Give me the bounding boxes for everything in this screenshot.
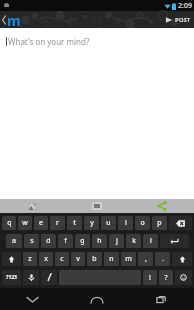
staticText: , [145,254,147,264]
staticText: b [92,254,97,264]
button[interactable]: k [126,234,141,248]
button[interactable]: ? [159,270,173,285]
button[interactable]: Share [129,199,194,213]
staticText: POST [175,16,191,24]
staticText: g [80,236,85,246]
button[interactable]: Backspace [169,216,192,230]
staticText: s [30,236,34,246]
button[interactable]: g [75,234,90,248]
button[interactable]: i [118,216,133,230]
staticText: n [109,254,114,264]
staticText: v [76,254,80,264]
button[interactable]: l [143,234,158,248]
button[interactable]: n [104,252,119,266]
button[interactable]: Emoji [175,270,192,285]
staticText: x [44,254,48,264]
button[interactable]: Hide keyboard [0,288,64,310]
button[interactable]: Attach photo [0,199,64,213]
button[interactable]: d [41,234,56,248]
staticText: i [125,218,127,228]
button[interactable]: Navigate up [0,11,25,28]
button[interactable]: Shift [2,252,21,266]
button[interactable]: e [34,216,48,230]
staticText: d [46,236,51,246]
staticText: j [116,236,118,246]
button[interactable]: Attach video [64,199,129,213]
staticText: f [64,236,67,246]
button[interactable]: ?123 [2,270,21,285]
button[interactable]: u [101,216,116,230]
staticText: w [22,218,28,228]
button[interactable]: t [67,216,82,230]
button[interactable]: a [6,234,22,248]
staticText: 2:09 [178,1,192,11]
button[interactable]: c [55,252,69,266]
staticText: a [12,236,16,246]
button[interactable]: j [109,234,124,248]
staticText: r [56,218,59,228]
button[interactable]: Handwriting [41,270,57,285]
button[interactable]: . [155,252,170,266]
button[interactable]: w [18,216,32,230]
button[interactable]: y [84,216,99,230]
staticText: o [140,218,145,228]
button[interactable]: POST [162,11,194,28]
button[interactable]: v [71,252,85,266]
staticText: l [150,236,152,246]
button[interactable]: Voice input [23,270,39,285]
button[interactable]: h [92,234,107,248]
button[interactable]: What's on your mind? [0,28,194,54]
staticText: u [106,218,111,228]
staticText: y [90,218,94,228]
button[interactable]: z [23,252,37,266]
button[interactable]: f [58,234,73,248]
staticText: . [162,254,164,264]
button[interactable]: Home [64,288,129,310]
staticText: m [7,11,21,28]
staticText: ! [149,273,151,283]
staticText: q [7,218,12,228]
button[interactable]: m [121,252,136,266]
staticText: p [157,218,162,228]
staticText: z [28,254,32,264]
button[interactable]: , [138,252,153,266]
staticText: ?123 [6,274,17,281]
staticText: k [132,236,136,246]
staticText: ? [164,273,168,283]
staticText: c [60,254,64,264]
staticText: What's on your mind? [8,36,90,47]
button[interactable]: ! [143,270,157,285]
button[interactable]: o [135,216,150,230]
staticText: t [73,218,76,228]
staticText: e [39,218,43,228]
staticText: m [125,254,132,264]
button[interactable]: Recent apps [129,288,194,310]
button[interactable]: Shift [172,252,192,266]
button[interactable]: Enter [160,234,189,248]
button[interactable]: b [87,252,102,266]
staticText: h [97,236,102,246]
button[interactable]: s [24,234,39,248]
button[interactable]: x [39,252,53,266]
button[interactable]: p [152,216,167,230]
button[interactable]: r [50,216,65,230]
button[interactable]: q [2,216,16,230]
